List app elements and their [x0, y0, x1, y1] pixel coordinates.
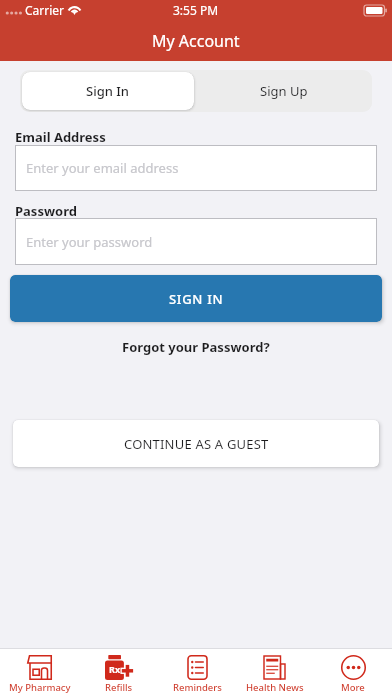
staticText: CONTINUE AS A GUEST — [124, 435, 269, 453]
button[interactable]: SIGN IN — [10, 275, 382, 322]
staticText: More — [341, 681, 365, 694]
button[interactable]: Enter your email address — [15, 145, 377, 191]
staticText: Enter your email address — [26, 159, 179, 177]
other: Signal strength — [5, 9, 22, 17]
button[interactable]: My Pharmacy — [0, 649, 79, 696]
button[interactable]: CONTINUE AS A GUEST — [13, 420, 379, 467]
staticText: 3:55 PM — [173, 2, 219, 18]
button[interactable]: Sign In — [22, 72, 194, 110]
other: Wi-Fi — [67, 4, 82, 14]
button[interactable]: Health News — [236, 649, 314, 696]
staticText: Sign Up — [260, 82, 308, 100]
button[interactable]: Enter your password — [15, 218, 377, 265]
staticText: Enter your password — [26, 233, 153, 251]
button[interactable]: Forgot your Password? — [0, 337, 392, 356]
staticText: Reminders — [173, 681, 222, 694]
staticText: Carrier — [25, 2, 65, 18]
button[interactable]: Reminders — [158, 649, 236, 696]
button[interactable]: More — [314, 649, 392, 696]
button[interactable]: Rx — [79, 649, 158, 696]
staticText: Rx — [109, 663, 121, 675]
staticText: Sign In — [86, 82, 130, 100]
staticText: Refills — [105, 681, 133, 694]
staticText: My Pharmacy — [9, 681, 71, 694]
staticText: SIGN IN — [169, 290, 224, 308]
staticText: Health News — [246, 681, 304, 694]
staticText: Password — [15, 202, 77, 220]
staticText: My Account — [152, 30, 240, 52]
staticText: Email Address — [15, 128, 106, 146]
staticText: Forgot your Password? — [122, 338, 270, 356]
button[interactable]: Sign Up — [196, 70, 372, 112]
other: Battery — [364, 5, 387, 16]
